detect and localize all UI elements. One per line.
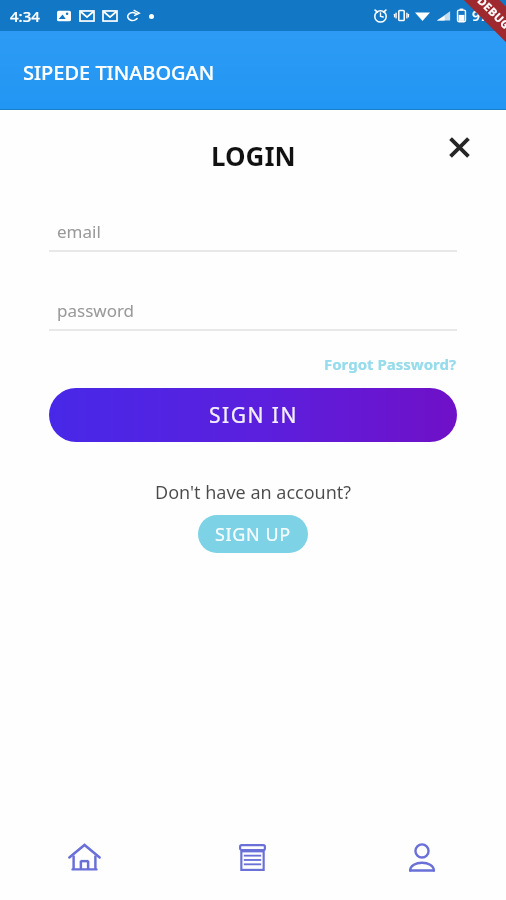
staticText: Don't have an account? bbox=[155, 480, 352, 505]
button[interactable]: Forgot Password? bbox=[322, 352, 459, 376]
button[interactable]: SIGN UP bbox=[198, 515, 308, 553]
staticText: email bbox=[57, 220, 101, 243]
staticText: SIGN UP bbox=[215, 522, 291, 547]
staticText: 97% bbox=[472, 6, 500, 25]
staticText: SIPEDE TINABOGAN bbox=[23, 59, 215, 86]
button[interactable]: SIGN IN bbox=[49, 388, 457, 442]
button[interactable]: News bbox=[168, 828, 337, 886]
button[interactable]: Account bbox=[337, 828, 506, 886]
button[interactable]: Home bbox=[0, 828, 168, 886]
staticText: Forgot Password? bbox=[324, 354, 457, 374]
staticText: password bbox=[57, 299, 135, 322]
button[interactable]: password bbox=[49, 299, 457, 331]
button[interactable]: Close bbox=[440, 128, 478, 166]
staticText: SIGN IN bbox=[209, 401, 298, 430]
staticText: DEBUG bbox=[475, 0, 506, 33]
button[interactable]: email bbox=[49, 220, 457, 252]
staticText: 4:34 bbox=[10, 6, 40, 26]
staticText: LOGIN bbox=[211, 138, 296, 173]
